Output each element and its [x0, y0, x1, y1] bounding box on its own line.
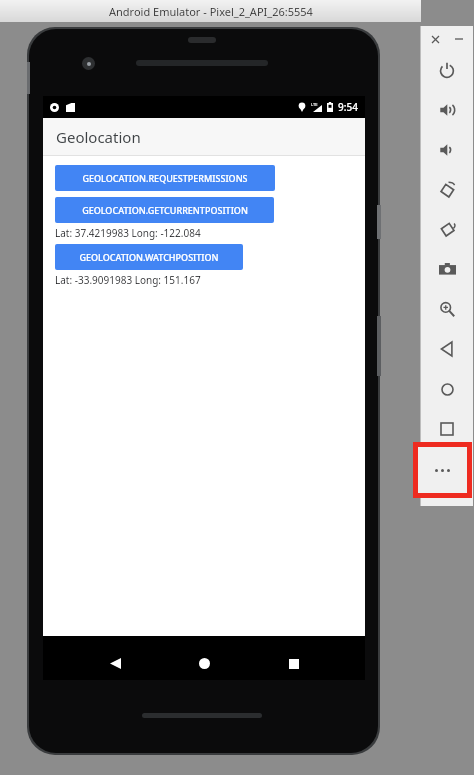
staticText: LTE: [311, 102, 318, 107]
button[interactable]: Recents: [276, 647, 312, 680]
button[interactable]: More: [418, 447, 467, 493]
button[interactable]: GEOLOCATION.REQUESTPERMISSIONS: [55, 165, 275, 191]
button[interactable]: Overview: [431, 412, 463, 446]
button[interactable]: Zoom: [431, 292, 463, 326]
button[interactable]: GEOLOCATION.WATCHPOSITION: [55, 244, 243, 270]
button[interactable]: GEOLOCATION.GETCURRENTPOSITION: [55, 197, 274, 223]
button[interactable]: Rotate right: [431, 212, 463, 246]
button[interactable]: Home: [186, 647, 222, 680]
button[interactable]: Power: [431, 53, 463, 87]
button[interactable]: Volume up: [431, 93, 463, 127]
button[interactable]: Rotate left: [431, 173, 463, 207]
staticText: 9:54: [338, 100, 358, 114]
button[interactable]: Geolocation: [43, 118, 365, 155]
button[interactable]: Back: [431, 332, 463, 366]
staticText: Geolocation: [56, 127, 141, 147]
button[interactable]: Volume down: [431, 133, 463, 167]
button[interactable]: Back: [97, 647, 133, 680]
staticText: Android Emulator - Pixel_2_API_26:5554: [109, 4, 313, 19]
staticText: GEOLOCATION.REQUESTPERMISSIONS: [82, 172, 248, 184]
staticText: GEOLOCATION.GETCURRENTPOSITION: [82, 204, 248, 216]
button[interactable]: Home: [431, 372, 463, 406]
button[interactable]: Minimize: [448, 28, 470, 50]
button[interactable]: Take screenshot: [431, 252, 463, 286]
staticText: Lat: 37.4219983 Long: -122.084: [55, 226, 201, 240]
staticText: GEOLOCATION.WATCHPOSITION: [79, 251, 219, 263]
staticText: Lat: -33.9091983 Long: 151.167: [55, 273, 201, 287]
button[interactable]: Close: [424, 28, 446, 50]
